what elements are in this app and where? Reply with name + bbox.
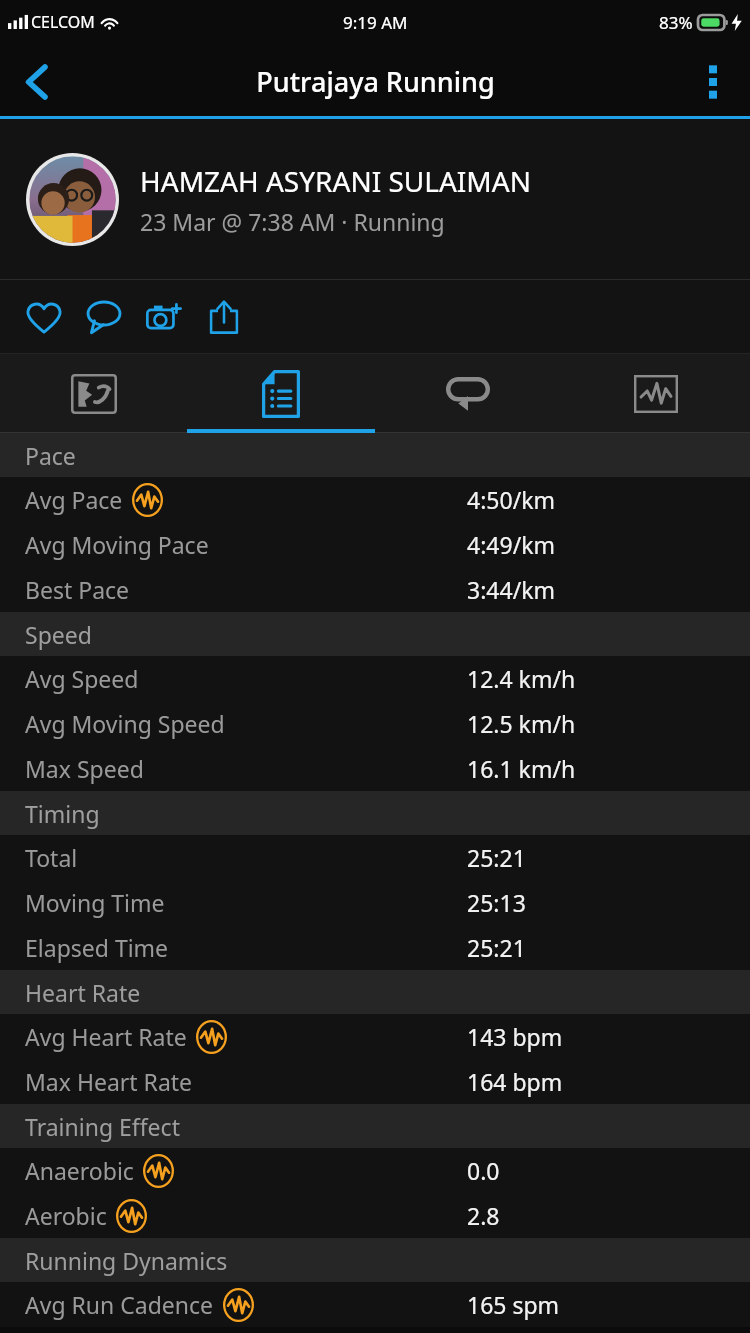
staticText: Total [25,842,78,873]
button[interactable]: Map [0,354,187,433]
button[interactable]: Avg Run Cadence [0,1282,750,1327]
button[interactable]: Avg Speed [0,656,750,701]
staticText: Putrajaya Running [256,63,495,100]
staticText: CELCOM [31,11,95,33]
button[interactable]: Avg Moving Speed [0,701,750,746]
button[interactable]: Moving Time [0,880,750,925]
button[interactable]: Avg Moving Pace [0,522,750,567]
staticText: Avg Pace [25,484,123,515]
staticText: Speed [25,619,92,650]
button[interactable]: Like [14,286,74,348]
button[interactable]: Elapsed Time [0,925,750,970]
staticText: 25:21 [467,842,526,873]
staticText: Aerobic [25,1200,107,1231]
button[interactable]: Laps [374,354,562,433]
staticText: 23 Mar @ 7:38 AM · Running [140,206,445,237]
button[interactable]: Details [187,354,374,433]
button[interactable]: Add photo [134,286,194,348]
staticText: 164 bpm [467,1066,563,1097]
staticText: Timing [25,798,100,829]
button[interactable]: Best Pace [0,567,750,612]
staticText: Moving Time [25,887,165,918]
staticText: HAMZAH ASYRANI SULAIMAN [140,162,531,200]
button[interactable]: Max Speed [0,746,750,791]
button[interactable]: Back [0,45,74,119]
staticText: Anaerobic [25,1155,134,1186]
staticText: Running Dynamics [25,1245,228,1276]
staticText: 12.5 km/h [467,708,576,739]
staticText: 143 bpm [467,1021,563,1052]
staticText: Max Speed [25,753,144,784]
staticText: 12.4 km/h [467,663,576,694]
staticText: 2.8 [467,1200,500,1231]
button[interactable]: Avg Heart Rate [0,1014,750,1059]
button[interactable]: Comment [74,286,134,348]
staticText: Training Effect [25,1111,180,1142]
staticText: Pace [25,440,76,471]
staticText: 0.0 [467,1155,500,1186]
button[interactable]: Aerobic [0,1193,750,1238]
button[interactable]: Share [194,286,254,348]
staticText: 3:44/km [467,574,555,605]
staticText: Best Pace [25,574,130,605]
staticText: Avg Moving Pace [25,529,209,560]
button[interactable]: Anaerobic [0,1148,750,1193]
staticText: 4:49/km [467,529,555,560]
button[interactable]: Charts [562,354,750,433]
staticText: Avg Run Cadence [25,1289,214,1320]
staticText: 25:13 [467,887,526,918]
staticText: Avg Heart Rate [25,1021,187,1052]
staticText: Avg Speed [25,663,139,694]
staticText: Elapsed Time [25,932,169,963]
staticText: Heart Rate [25,977,141,1008]
button[interactable]: More options [676,45,750,119]
staticText: 25:21 [467,932,526,963]
staticText: 9:19 AM [343,11,408,34]
staticText: Avg Moving Speed [25,708,225,739]
button[interactable]: Total [0,835,750,880]
staticText: 16.1 km/h [467,753,576,784]
staticText: Max Heart Rate [25,1066,193,1097]
staticText: 4:50/km [467,484,555,515]
staticText: 83% [659,11,693,34]
button[interactable]: Max Heart Rate [0,1059,750,1104]
button[interactable]: Avg Pace [0,477,750,522]
staticText: 165 spm [467,1289,560,1320]
